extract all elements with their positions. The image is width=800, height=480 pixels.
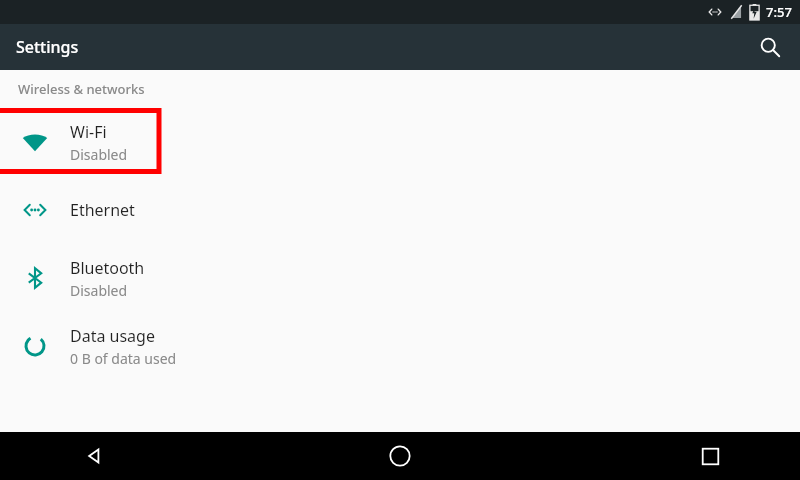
button[interactable]: Back bbox=[72, 434, 116, 478]
button[interactable]: Home bbox=[378, 434, 422, 478]
button[interactable]: Data usage bbox=[0, 312, 800, 380]
button[interactable]: Recent apps bbox=[688, 434, 732, 478]
staticText: Ethernet bbox=[70, 199, 135, 221]
staticText: Settings bbox=[16, 36, 79, 58]
staticText: Data usage bbox=[70, 325, 155, 347]
staticText: Bluetooth bbox=[70, 257, 145, 279]
staticText: Disabled bbox=[70, 281, 128, 300]
button[interactable]: Wi-Fi bbox=[0, 108, 800, 176]
staticText: Wireless & networks bbox=[18, 80, 145, 98]
button[interactable]: Ethernet bbox=[0, 176, 800, 244]
staticText: Disabled bbox=[70, 145, 128, 164]
staticText: 0 B of data used bbox=[70, 349, 177, 368]
button[interactable]: Bluetooth bbox=[0, 244, 800, 312]
button[interactable]: Search bbox=[750, 27, 790, 67]
staticText: 7:57 bbox=[766, 3, 792, 21]
staticText: Wi-Fi bbox=[70, 121, 107, 143]
